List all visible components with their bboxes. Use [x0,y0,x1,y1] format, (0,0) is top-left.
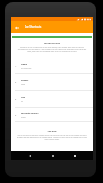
staticText: Name [21,63,27,66]
staticText: Gender [21,79,29,82]
button[interactable]: Home [48,151,57,160]
button[interactable]: Back [25,151,34,160]
staticText: 1. [15,65,21,67]
staticText: Male [21,83,25,85]
staticText: 2. [15,81,21,83]
button[interactable]: Recents [70,151,79,160]
button[interactable]: Back [11,22,22,33]
staticText: 34 [21,100,23,102]
staticText: Please fill in the 4 questions in this f… [16,46,88,52]
staticText: 4. [15,114,21,116]
button[interactable]: 2. [11,74,93,91]
staticText: Ice Shortcuts [25,25,42,29]
staticText: THE END [11,130,93,133]
staticText: This is the end of the form. Simply pres… [16,134,88,140]
staticText: INSTRUCTIONS [11,42,93,45]
staticText: Favourite colours [21,112,39,115]
button[interactable]: 1. [11,58,93,74]
staticText: Age [21,96,25,99]
staticText: 3. [15,98,21,100]
staticText: Ice Shortcuts [21,67,32,69]
staticText: string [21,116,26,118]
button[interactable]: 3. [11,91,93,108]
button[interactable]: 4. [11,108,93,122]
